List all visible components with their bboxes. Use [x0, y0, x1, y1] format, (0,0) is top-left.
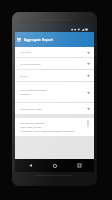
staticText: Jan 2016 — [20, 75, 28, 78]
staticText: HFC monthly summary — [20, 63, 41, 66]
staticText: African Medical and Research Foundation — [20, 89, 47, 96]
button[interactable]: Select Union — [15, 47, 94, 58]
button[interactable]: Home — [45, 159, 65, 172]
staticText: Select Union, Jan 2016 — [20, 126, 42, 129]
button[interactable]: Open navigation drawer — [15, 32, 23, 47]
staticText: Improve access to water — [20, 108, 43, 111]
button[interactable]: Back — [20, 159, 40, 172]
button[interactable]: African Medical and Research Foundation — [15, 82, 94, 103]
button[interactable]: Jan 2016 — [15, 70, 94, 82]
staticText: HFC monthly summary — [20, 122, 45, 125]
staticText: Organization: African Medical and Resear… — [20, 130, 75, 133]
staticText: Aggregate Report — [24, 37, 53, 42]
staticText: Select Union — [20, 51, 32, 54]
button[interactable]: Recent apps — [69, 159, 89, 172]
button[interactable]: HFC monthly summary — [15, 58, 94, 70]
button[interactable]: Improve access to water — [15, 103, 94, 115]
button[interactable]: HFC monthly summary — [15, 118, 94, 136]
